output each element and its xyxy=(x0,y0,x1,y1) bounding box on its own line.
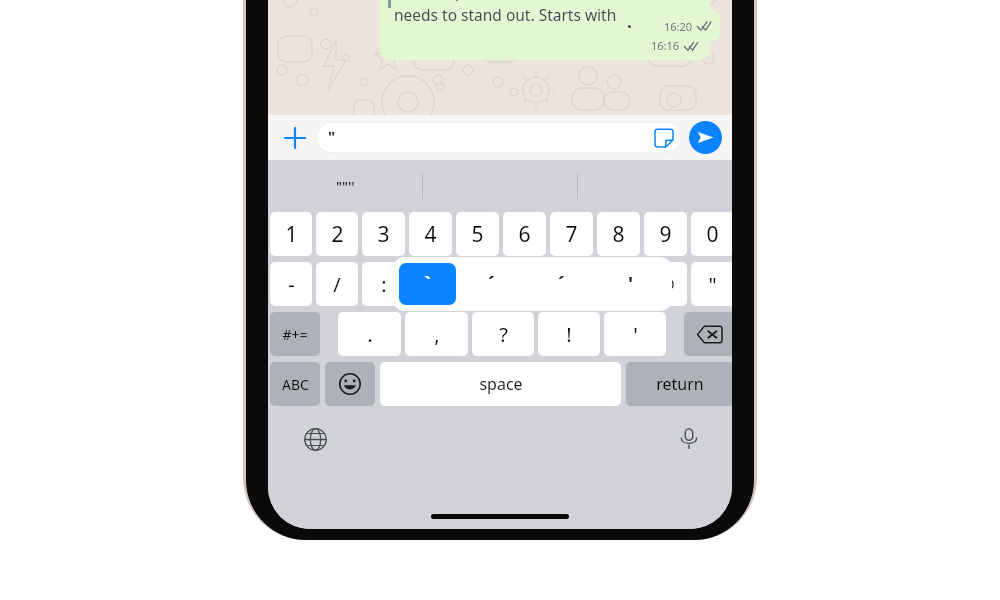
staticText: 7 xyxy=(565,220,578,249)
button[interactable]: " xyxy=(691,262,732,306)
staticText: ' xyxy=(628,271,634,297)
staticText: " xyxy=(708,271,717,298)
staticText: ` xyxy=(424,271,431,297)
staticText: ? xyxy=(499,321,508,348)
staticText: ´ xyxy=(558,271,565,297)
staticText: 8 xyxy=(612,220,625,249)
staticText: 5 xyxy=(471,220,484,249)
button[interactable]: ` xyxy=(399,263,456,305)
button[interactable]: return xyxy=(626,362,732,406)
button[interactable]: - xyxy=(270,262,312,306)
staticText: , xyxy=(434,321,440,348)
button[interactable]: ´ xyxy=(526,263,596,305)
staticText: / xyxy=(333,271,341,298)
button[interactable]: : xyxy=(362,262,405,306)
button[interactable]: 7 xyxy=(550,212,593,256)
staticText: ' xyxy=(633,321,638,348)
button[interactable]: 9 xyxy=(644,212,687,256)
button[interactable]: ( xyxy=(456,262,499,306)
button[interactable]: ""'' xyxy=(268,160,422,212)
staticText: ABC xyxy=(282,375,309,394)
button[interactable]: ABC xyxy=(270,362,320,406)
button[interactable]: Emoji xyxy=(325,362,375,406)
button[interactable]: $ xyxy=(550,262,593,306)
button[interactable]: Backspace xyxy=(684,312,732,356)
staticText: @ xyxy=(657,271,675,298)
button[interactable]: Dictation xyxy=(672,422,706,456)
button[interactable]: @ xyxy=(644,262,687,306)
button[interactable]: ! xyxy=(538,312,600,356)
button[interactable]: ´ xyxy=(456,263,526,305)
button[interactable]: 2 xyxy=(316,212,358,256)
staticText: " xyxy=(328,126,336,146)
staticText: space xyxy=(479,373,523,395)
staticText: 1 xyxy=(285,220,298,249)
staticText: a block quote for some text that xyxy=(394,0,627,1)
button[interactable]: #+= xyxy=(270,312,320,356)
staticText: #+= xyxy=(282,325,308,344)
button[interactable]: , xyxy=(405,312,468,356)
staticText: 6 xyxy=(518,220,531,249)
button[interactable]: ' xyxy=(604,312,666,356)
button[interactable]: 0 xyxy=(691,212,732,256)
staticText: 16:16 xyxy=(651,38,680,53)
button[interactable]: ? xyxy=(472,312,534,356)
button[interactable]: " xyxy=(316,122,682,153)
staticText: needs to stand out. Starts with a > xyxy=(394,4,642,25)
button[interactable]: / xyxy=(316,262,358,306)
button[interactable]: 1 xyxy=(270,212,312,256)
staticText: ; xyxy=(428,271,434,298)
staticText: - xyxy=(288,271,295,298)
button[interactable]: 6 xyxy=(503,212,546,256)
staticText: ´ xyxy=(488,271,495,297)
staticText: 9 xyxy=(659,220,672,249)
staticText: ! xyxy=(566,321,572,348)
button[interactable]: . xyxy=(338,312,401,356)
staticText: 4 xyxy=(424,220,437,249)
button[interactable]: 8 xyxy=(597,212,640,256)
staticText: return xyxy=(656,373,704,395)
button[interactable]: & xyxy=(597,262,640,306)
staticText: ""'' xyxy=(336,177,355,196)
button[interactable]: Stickers xyxy=(654,128,674,148)
staticText: 0 xyxy=(706,220,719,249)
staticText: 3 xyxy=(377,220,390,249)
button[interactable]: 5 xyxy=(456,212,499,256)
button[interactable]: 4 xyxy=(409,212,452,256)
button[interactable]: ' xyxy=(596,263,666,305)
staticText: : xyxy=(381,271,387,298)
staticText: . xyxy=(367,321,373,348)
button[interactable]: Attach xyxy=(278,121,312,155)
button[interactable]: 3 xyxy=(362,212,405,256)
button[interactable]: ; xyxy=(409,262,452,306)
button[interactable]: Change keyboard xyxy=(298,422,332,456)
staticText: 16:20 xyxy=(664,19,693,34)
button[interactable]: Send xyxy=(689,121,722,154)
button[interactable]: space xyxy=(380,362,621,406)
staticText: 2 xyxy=(331,220,344,249)
